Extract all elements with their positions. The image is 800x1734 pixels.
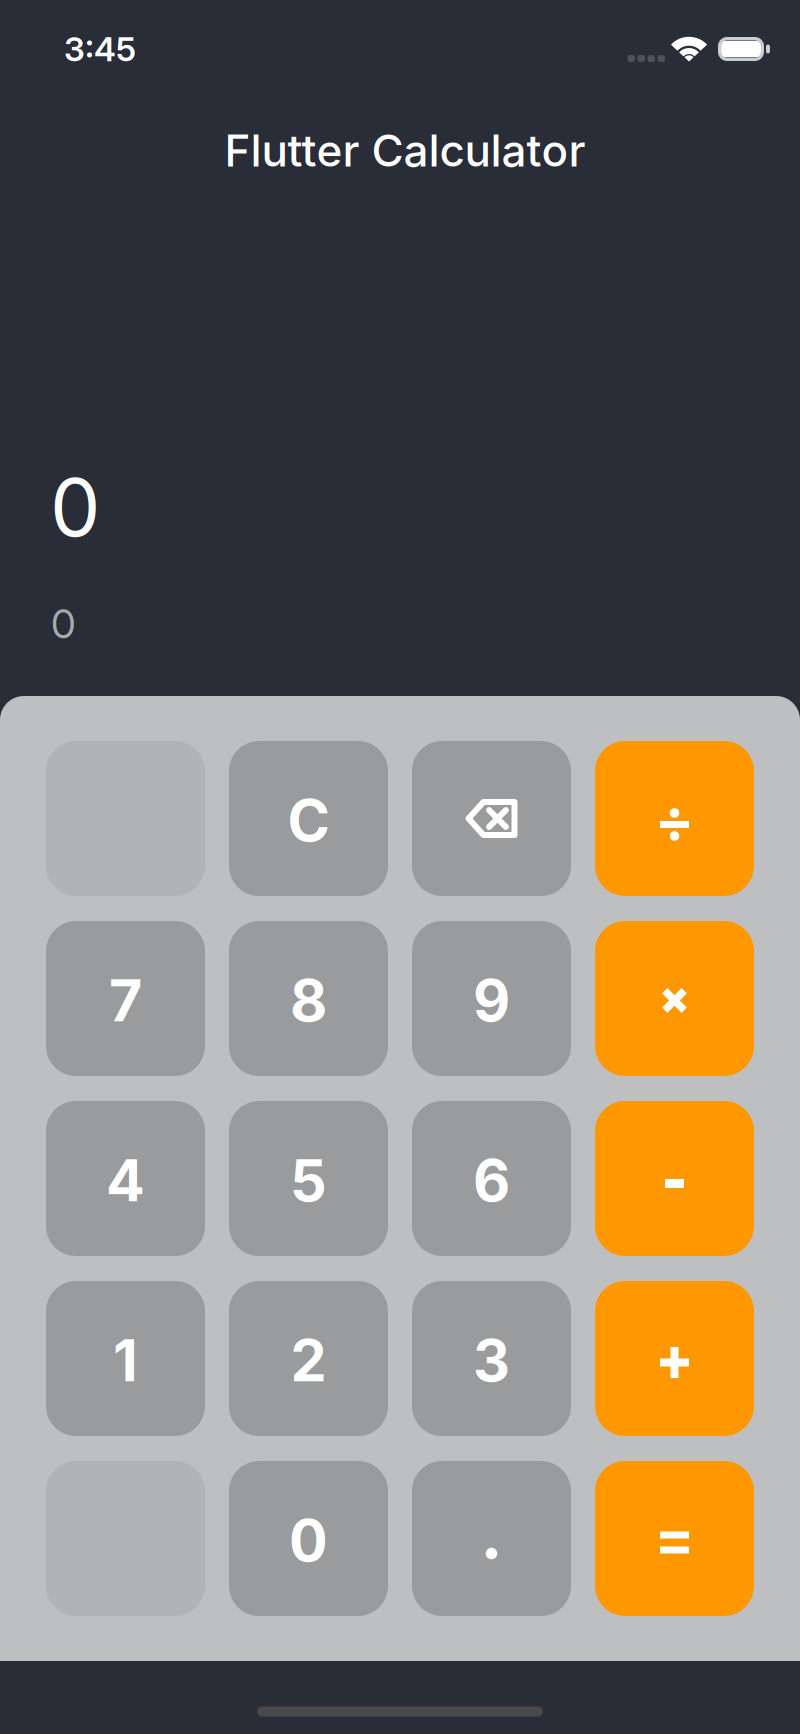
staticText: 5 [290, 1146, 327, 1215]
button[interactable]: 1 [46, 1281, 205, 1436]
staticText: 3 [473, 1326, 510, 1395]
button[interactable]: Decimal point [412, 1461, 571, 1616]
button[interactable]: Equals [595, 1461, 754, 1616]
staticText: C [287, 786, 329, 855]
staticText: 7 [109, 966, 142, 1035]
button[interactable]: Divide [595, 741, 754, 896]
button[interactable]: Plus [595, 1281, 754, 1436]
staticText: 2 [290, 1326, 326, 1395]
staticText: Flutter Calculator [224, 124, 585, 177]
staticText: 0 [289, 1506, 328, 1575]
button[interactable]: Minus [595, 1101, 754, 1256]
button[interactable]: 4 [46, 1101, 205, 1256]
staticText: 0 [51, 600, 76, 648]
button[interactable]: 5 [229, 1101, 388, 1256]
button[interactable]: 2 [229, 1281, 388, 1436]
staticText: 4 [106, 1146, 145, 1215]
button[interactable]: Backspace [412, 741, 571, 896]
staticText: 3:45 [64, 29, 136, 69]
staticText: 0 [50, 459, 100, 556]
button[interactable]: 0 [229, 1461, 388, 1616]
staticText: 6 [473, 1146, 510, 1215]
button[interactable]: C [229, 741, 388, 896]
staticText: 9 [473, 966, 510, 1035]
button[interactable]: 9 [412, 921, 571, 1076]
button[interactable]: 3 [412, 1281, 571, 1436]
staticText: 8 [290, 966, 327, 1035]
button[interactable]: 8 [229, 921, 388, 1076]
staticText: 1 [113, 1326, 138, 1395]
button[interactable]: Multiply [595, 921, 754, 1076]
button[interactable]: 7 [46, 921, 205, 1076]
button[interactable]: 6 [412, 1101, 571, 1256]
